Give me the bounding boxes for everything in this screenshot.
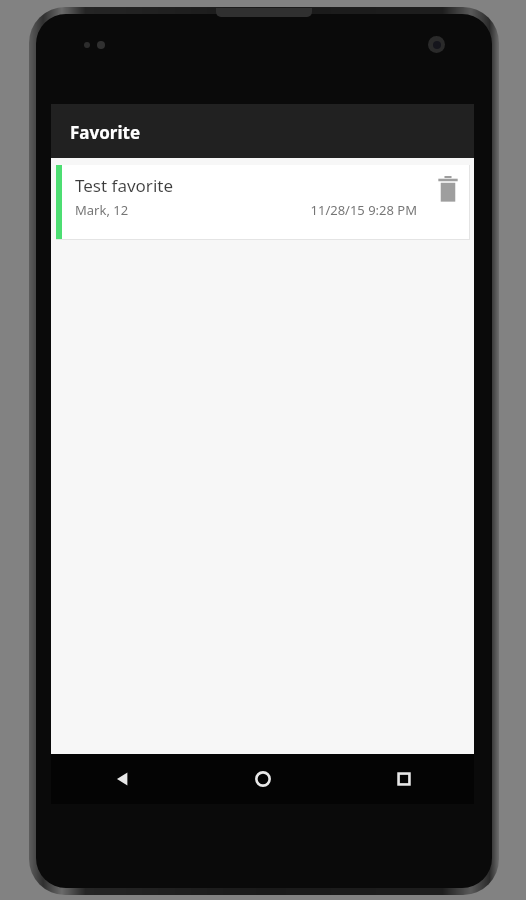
staticText: Favorite <box>70 121 141 144</box>
button[interactable]: Back <box>51 754 192 804</box>
button[interactable]: Test favorite <box>56 165 469 239</box>
staticText: 11/28/15 9:28 PM <box>310 201 417 219</box>
button[interactable]: Home <box>192 754 333 804</box>
button[interactable]: Delete favorite <box>427 165 469 239</box>
staticText: Mark, 12 <box>75 201 129 219</box>
button[interactable]: Recent apps <box>333 754 474 804</box>
staticText: Test favorite <box>75 174 173 197</box>
